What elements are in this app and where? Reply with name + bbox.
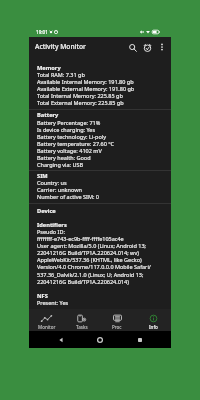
staticText: Total External Memory: 225.85 gb [37,99,124,106]
staticText: Number of active SIM: 0 [37,193,99,200]
staticText: Battery voltage: 4102 mV [37,147,102,154]
staticText: 19:01 [36,29,48,35]
staticText: Present: Yes [37,299,69,306]
staticText: 22041216G Build/TP1A.220624.014; wv) [37,249,139,256]
staticText: Identifiers [37,221,67,229]
button[interactable]: Monitor [29,309,64,331]
button[interactable]: Proc [99,309,135,331]
staticText: AppleWebKit/537.36 (KHTML, like Gecko) [37,256,142,263]
staticText: Total Internal Memory: 225.85 gb [37,92,123,99]
staticText: ffffffff-e743-ec9b-ffff-ffffe105ac4e [37,235,124,242]
staticText: Available Internal Memory: 191.80 gb [37,78,134,85]
staticText: Device [37,207,56,215]
staticText: Monitor [38,324,56,330]
staticText: Charging via: USB [37,161,84,168]
staticText: Version/4.0 Chrome/117.0.0.0 Mobile Safa… [37,263,151,270]
staticText: NFS [37,292,48,300]
button[interactable]: Home [92,332,108,348]
staticText: 22041216G Build/TP1A.220624.014) [37,278,129,285]
button[interactable]: Back [53,332,69,348]
staticText: Battery health: Good [37,154,91,161]
staticText: Battery technology: Li-poly [37,133,106,140]
staticText: Info [149,324,158,330]
staticText: Battery Percentage: 71% [37,119,101,126]
staticText: Total RAM: 7.31 gb [37,71,85,78]
button[interactable]: Alarm [139,39,155,55]
staticText: SIM [37,172,48,180]
staticText: Country: us [37,179,67,186]
button[interactable]: Tasks [64,309,99,331]
button[interactable]: Recents [132,332,148,348]
staticText: Memory [37,64,61,72]
staticText: Battery [37,111,59,119]
staticText: Carrier: unknown [37,186,82,193]
button[interactable]: More options [155,40,169,54]
staticText: Proc [112,324,122,330]
staticText: Tasks [76,324,88,330]
staticText: Available External Memory: 191.80 gb [37,85,135,92]
staticText: Pseudo ID: [37,228,65,235]
staticText: Activity Monitor [35,42,86,51]
staticText: Is device charging: Yes [37,126,96,133]
staticText: User agent: Mozilla/5.0 (Linux; Android … [37,242,147,249]
button[interactable]: Search [126,41,139,54]
staticText: 537.36_Dalvik/2.1.0 (Linux; U; Android 1… [37,271,144,278]
staticText: Battery temperature: 27.60 °C [37,140,115,147]
button[interactable]: Info [135,309,171,331]
